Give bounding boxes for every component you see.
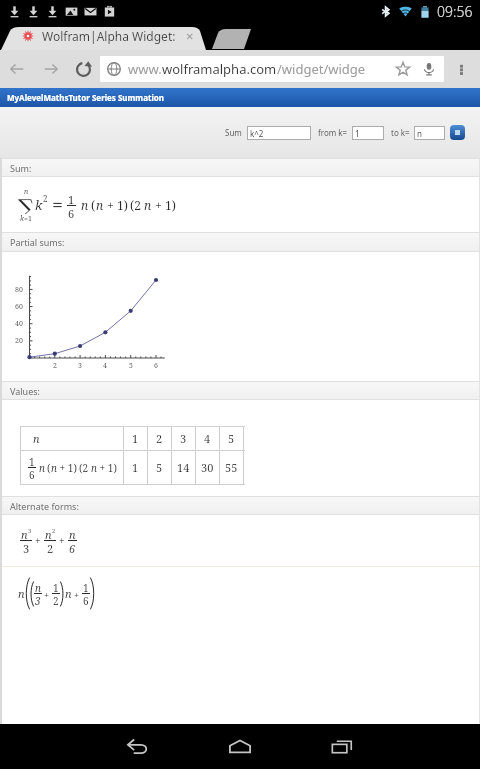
button[interactable]: 1 (352, 126, 384, 140)
staticText: 80 (15, 285, 23, 295)
staticText: n (35, 581, 41, 593)
staticText: 1 (68, 192, 75, 205)
staticText: + (35, 534, 41, 548)
staticText: n (21, 527, 28, 540)
button[interactable]: More options (444, 50, 478, 88)
staticText: n (96, 197, 104, 213)
button[interactable]: www. (100, 56, 444, 82)
staticText: 3 (28, 527, 32, 535)
staticText: k^2 (250, 128, 264, 139)
staticText: 40 (15, 319, 23, 329)
button[interactable]: Back (0, 50, 34, 88)
staticText: 14 (177, 460, 190, 475)
staticText: 1 (132, 460, 139, 475)
staticText: 1 (53, 581, 59, 593)
staticText: n (91, 461, 97, 475)
staticText: n (69, 527, 76, 540)
staticText: /widget/widge (277, 60, 366, 78)
staticText: + 1) (57, 461, 77, 475)
staticText: from k= (318, 127, 348, 138)
staticText: 30 (201, 460, 214, 475)
staticText: n (18, 586, 25, 601)
staticText: + (59, 534, 65, 548)
staticText: Sum: (10, 162, 32, 174)
staticText: 4 (204, 431, 211, 446)
staticText: Values: (10, 385, 40, 397)
staticText: 6 (69, 541, 76, 554)
staticText: ( (47, 461, 51, 475)
button[interactable]: Compute (450, 125, 465, 140)
staticText: 09:56 (437, 2, 473, 21)
staticText: n (51, 461, 57, 475)
button[interactable]: Back (104, 724, 172, 769)
staticText: =1 (24, 214, 32, 223)
button[interactable]: Home (206, 724, 274, 769)
staticText: 3 (23, 541, 30, 554)
staticText: Partial sums: (10, 236, 65, 248)
staticText: n (144, 197, 152, 213)
staticText: Alternate forms: (10, 500, 79, 512)
staticText: 6 (29, 468, 35, 480)
staticText: + 1) (104, 197, 128, 213)
staticText: 3 (78, 361, 82, 371)
staticText: 6 (83, 594, 89, 606)
button[interactable]: Reload (67, 50, 100, 88)
staticText: 4 (103, 361, 107, 371)
staticText: MyAlevelMathsTutor Series Summation (7, 92, 165, 103)
staticText: n (417, 128, 422, 139)
staticText: wolframalpha.com (162, 60, 277, 78)
staticText: (2 (79, 461, 91, 475)
staticText: + (44, 588, 50, 600)
staticText: 60 (15, 302, 23, 312)
staticText: to k= (391, 127, 410, 138)
staticText: Wolfram|Alpha Widget: (42, 28, 176, 44)
staticText: n (65, 586, 72, 601)
staticText: 5 (228, 431, 235, 446)
staticText: n (33, 431, 40, 446)
button[interactable]: Forward (34, 50, 67, 88)
staticText: www. (128, 60, 162, 78)
staticText: n (39, 461, 45, 475)
staticText: 2 (53, 594, 59, 606)
staticText: 1 (132, 431, 139, 446)
staticText: 2 (52, 527, 56, 535)
staticText: 2 (43, 193, 48, 204)
staticText: 1 (355, 128, 360, 139)
staticText: + (74, 588, 80, 600)
staticText: 2 (156, 431, 163, 446)
staticText: + 1) (97, 461, 117, 475)
staticText: k (35, 196, 43, 214)
staticText: 5 (156, 460, 163, 475)
button[interactable]: Bookmark (390, 56, 415, 82)
staticText: 55 (225, 460, 238, 475)
staticText: 3 (35, 594, 41, 606)
staticText: 3 (180, 431, 187, 446)
staticText: 6 (68, 206, 75, 219)
staticText: 2 (53, 361, 57, 371)
button[interactable]: Wolfram|Alpha Widget: (22, 27, 194, 45)
staticText: n (81, 197, 89, 213)
staticText: n (45, 527, 52, 540)
staticText: 20 (15, 336, 23, 346)
staticText: × (186, 27, 194, 45)
staticText: k (20, 214, 24, 223)
button[interactable]: Voice search (415, 56, 442, 82)
button[interactable]: k^2 (247, 126, 311, 140)
staticText: (2 (130, 197, 144, 213)
staticText: 1 (83, 581, 89, 593)
staticText: + 1) (152, 197, 176, 213)
staticText: n (24, 187, 29, 195)
staticText: 1 (29, 455, 35, 467)
staticText: ( (91, 197, 96, 213)
staticText: 6 (154, 361, 158, 371)
staticText: ∑ (18, 195, 35, 214)
staticText: 5 (129, 361, 133, 371)
button[interactable]: Recents (308, 724, 376, 769)
button[interactable]: n (414, 126, 445, 140)
staticText: 2 (47, 541, 54, 554)
staticText: Sum (225, 127, 242, 138)
